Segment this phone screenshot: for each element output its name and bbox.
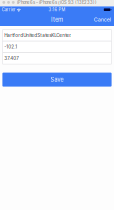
staticText: Save — [50, 76, 63, 83]
staticText: 3:16 PM — [48, 7, 65, 12]
button[interactable]: Save — [0, 64, 114, 87]
staticText: iPhone 6s – iPhone 6s (iOS 9.3 (13E233)) — [17, 0, 97, 5]
button[interactable]: Cancel — [91, 14, 114, 25]
staticText: Cancel — [94, 16, 111, 23]
staticText: Item — [51, 16, 63, 23]
staticText: 37.407 — [4, 56, 19, 61]
staticText: HartfordUnitedStatesKLCenter. — [4, 33, 71, 38]
staticText: Carrier — [2, 7, 16, 12]
staticText: -102.1 — [4, 44, 17, 50]
